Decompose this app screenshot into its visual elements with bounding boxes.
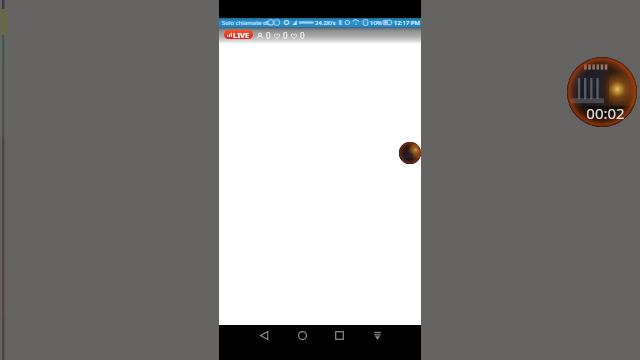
button[interactable]: LIVE [224,30,253,39]
button[interactable]: Hide navigation bar [361,324,393,346]
button[interactable]: 0 [255,30,272,41]
staticText: 0 [300,30,305,41]
button[interactable]: Back [248,324,280,346]
button[interactable]: 0 [272,30,289,41]
staticText: 24.2K/s [315,19,336,27]
staticText: 0 [266,30,271,41]
staticText: 10% [370,19,382,27]
staticText: 0 [283,30,288,41]
staticText: LIVE [233,30,250,39]
staticText: Solo chiamate di... [222,19,274,27]
button[interactable]: Recent apps [323,324,355,346]
button[interactable]: Home [286,324,318,346]
staticText: 12:17 PM [394,19,420,27]
button[interactable]: Screen recorder preview [567,57,637,127]
button[interactable]: 0 [289,30,306,41]
button[interactable]: Viewer avatar [399,142,421,164]
staticText: 00:02 [586,103,625,123]
